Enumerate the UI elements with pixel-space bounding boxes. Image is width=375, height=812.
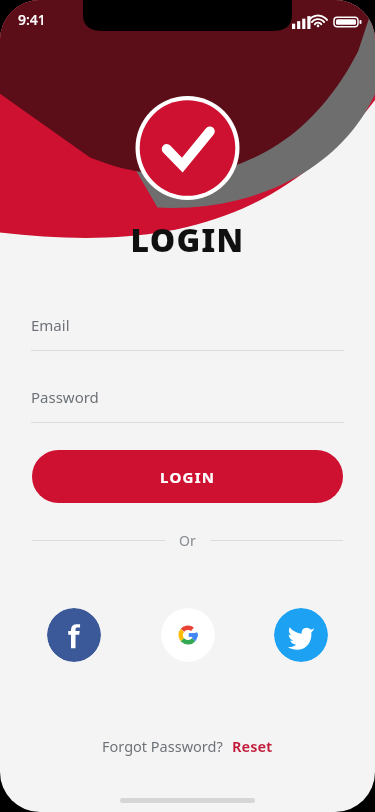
staticText: LOGIN [160, 467, 216, 487]
button[interactable]: Sign in with Twitter [274, 608, 328, 662]
button[interactable]: Sign in with Google [161, 608, 215, 662]
button[interactable]: LOGIN [32, 450, 343, 503]
staticText: LOGIN [0, 218, 375, 262]
staticText: Forgot Password? [102, 736, 223, 756]
button[interactable]: Reset [232, 736, 273, 756]
staticText: Or [179, 531, 196, 550]
staticText: Password [31, 387, 99, 407]
button[interactable]: Sign in with Facebook [47, 608, 101, 662]
staticText: Email [31, 315, 70, 335]
button[interactable]: Email [31, 315, 344, 351]
staticText: 9:41 [18, 10, 46, 29]
staticText: Reset [232, 736, 273, 756]
button[interactable]: Password [31, 387, 344, 423]
